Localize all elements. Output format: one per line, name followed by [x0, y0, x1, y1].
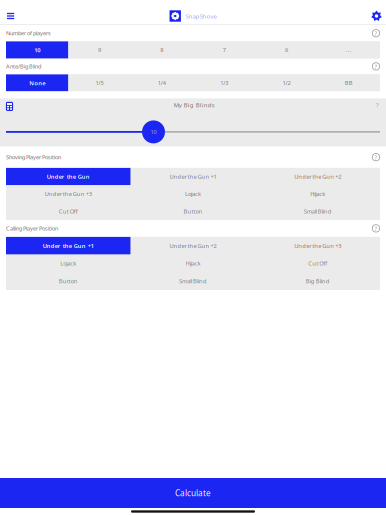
staticText: 10 — [34, 46, 40, 54]
button[interactable]: 1/2 — [255, 74, 318, 91]
button[interactable]: Small Blind — [131, 272, 255, 290]
button[interactable]: Help: Ante/Big Blind — [371, 61, 381, 71]
staticText: ? — [376, 101, 379, 109]
button[interactable]: Help: Calling Player Position — [371, 223, 381, 233]
staticText: Under the Gun +3 — [294, 242, 341, 250]
button[interactable]: Calculate — [0, 478, 386, 508]
staticText: Small Blind — [179, 277, 207, 285]
button[interactable]: BB — [318, 74, 380, 91]
staticText: Button — [59, 277, 78, 285]
button[interactable]: 1/3 — [193, 74, 255, 91]
button[interactable]: Small Blind — [255, 203, 380, 220]
button[interactable]: Under the Gun — [6, 168, 131, 185]
staticText: Button — [183, 207, 202, 215]
button[interactable]: 8 — [131, 41, 193, 58]
staticText: ... — [346, 46, 352, 54]
staticText: Under the Gun +1 — [43, 242, 94, 250]
staticText: 1/5 — [95, 79, 103, 87]
staticText: SnapShove — [185, 12, 216, 20]
button[interactable]: Under the Gun +2 — [255, 168, 380, 185]
staticText: Under the Gun +3 — [45, 190, 92, 198]
staticText: 8 — [160, 46, 163, 54]
staticText: ? — [374, 153, 377, 161]
button[interactable]: Hijack — [131, 255, 255, 272]
button[interactable]: 7 — [193, 41, 255, 58]
button[interactable]: Settings — [364, 7, 386, 24]
button[interactable]: Under the Gun +3 — [6, 185, 131, 202]
button[interactable]: Cut Off — [6, 203, 131, 220]
staticText: 1/3 — [220, 79, 228, 87]
staticText: Hijack — [185, 259, 200, 267]
staticText: Shoving Player Position — [6, 153, 61, 161]
staticText: None — [29, 79, 45, 87]
button[interactable]: Cut Off — [255, 255, 380, 272]
staticText: Small Blind — [304, 207, 332, 215]
staticText: Lojack — [185, 190, 201, 198]
staticText: Calculate — [175, 487, 211, 499]
button[interactable]: None — [6, 74, 68, 91]
button[interactable]: Under the Gun +2 — [131, 237, 255, 255]
button[interactable]: Lojack — [6, 255, 131, 272]
button[interactable]: 1/5 — [68, 74, 131, 91]
button[interactable]: Hijack — [255, 185, 380, 202]
button[interactable]: Help: Number of players — [371, 28, 381, 38]
staticText: Ante/Big Blind — [6, 63, 41, 70]
button[interactable]: Menu — [0, 9, 21, 23]
staticText: Under the Gun +2 — [169, 242, 216, 250]
staticText: Cut Off — [59, 207, 78, 215]
staticText: 6 — [285, 46, 288, 54]
staticText: Under the Gun +2 — [294, 173, 341, 180]
staticText: 10 — [150, 128, 156, 136]
button[interactable]: 1/4 — [131, 74, 193, 91]
staticText: Big Blind — [306, 277, 330, 285]
button[interactable]: Button — [6, 272, 131, 290]
button[interactable]: Lojack — [131, 185, 255, 202]
button[interactable]: Under the Gun +1 — [6, 237, 131, 255]
staticText: Cut Off — [308, 259, 327, 267]
staticText: 1/4 — [158, 79, 166, 87]
staticText: My Big Blinds — [174, 101, 215, 109]
staticText: Hijack — [310, 190, 325, 198]
staticText: Number of players — [6, 29, 51, 37]
button[interactable]: Under the Gun +1 — [131, 168, 255, 185]
button[interactable]: 10 — [6, 41, 68, 58]
staticText: Lojack — [60, 259, 76, 267]
button[interactable]: Help: My Big Blinds — [375, 100, 380, 110]
staticText: ? — [374, 224, 377, 232]
staticText: 1/2 — [282, 79, 290, 87]
staticText: 7 — [223, 46, 226, 54]
staticText: Under the Gun — [47, 173, 90, 180]
staticText: BB — [345, 79, 353, 87]
staticText: ? — [374, 62, 377, 70]
staticText: Calling Player Position — [6, 225, 58, 232]
button[interactable]: Big Blind — [255, 272, 380, 290]
button[interactable]: 9 — [68, 41, 131, 58]
button[interactable]: Help: Shoving Player Position — [371, 152, 381, 162]
button[interactable]: Under the Gun +3 — [255, 237, 380, 255]
staticText: Under the Gun +1 — [169, 173, 216, 180]
button[interactable]: 6 — [255, 41, 318, 58]
button[interactable]: Button — [131, 203, 255, 220]
staticText: ? — [374, 29, 377, 37]
staticText: 9 — [98, 46, 101, 54]
